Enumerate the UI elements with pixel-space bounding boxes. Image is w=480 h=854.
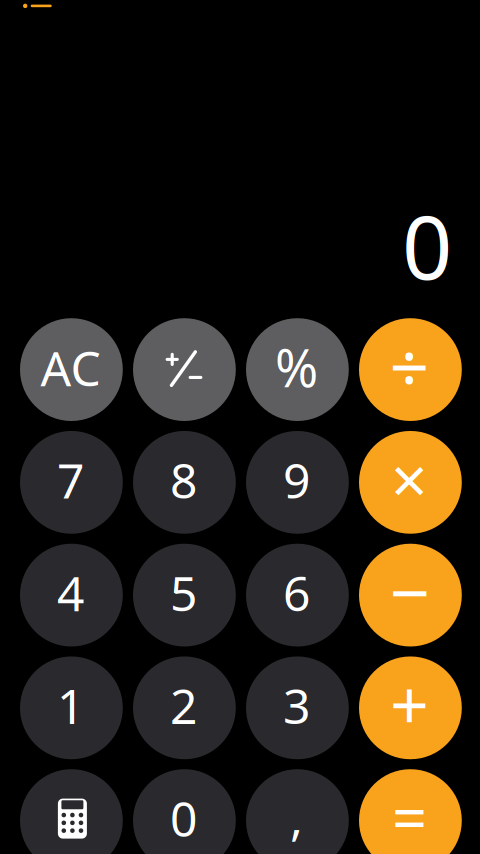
staticText: 1 (57, 673, 84, 737)
button[interactable]: 0 (133, 769, 236, 854)
button[interactable]: 8 (133, 431, 236, 534)
button[interactable]: Equals (359, 769, 462, 854)
staticText: 2 (170, 673, 197, 737)
button[interactable]: 6 (246, 544, 349, 646)
button[interactable]: 7 (20, 431, 123, 534)
staticText: 8 (170, 448, 197, 512)
staticText: 4 (57, 561, 84, 624)
staticText: 7 (57, 448, 84, 512)
button[interactable]: All clear (20, 318, 123, 421)
button[interactable]: Percent (246, 318, 349, 421)
button[interactable]: Plus minus (133, 318, 236, 421)
button[interactable]: 4 (20, 544, 123, 646)
staticText: 5 (170, 561, 197, 624)
button[interactable]: 5 (133, 544, 236, 646)
staticText: AC (40, 336, 100, 399)
staticText: × (391, 436, 428, 521)
button[interactable]: 2 (133, 656, 236, 759)
button[interactable]: 1 (20, 656, 123, 759)
staticText: = (392, 776, 427, 854)
staticText: % (275, 333, 318, 402)
button[interactable]: Add (359, 656, 462, 759)
staticText: 9 (283, 448, 310, 512)
staticText: 0 (170, 786, 197, 850)
button[interactable]: Calculator history (20, 769, 123, 854)
button[interactable]: 3 (246, 656, 349, 759)
button[interactable]: Decimal separator (246, 769, 349, 854)
staticText: 0 (402, 187, 452, 304)
button[interactable]: Multiply (359, 431, 462, 534)
staticText: , (290, 785, 303, 849)
staticText: 3 (283, 673, 310, 737)
button[interactable]: Divide (359, 318, 462, 421)
button[interactable]: Subtract (359, 544, 462, 646)
button[interactable]: 9 (246, 431, 349, 534)
staticText: 6 (283, 561, 310, 624)
staticText: ÷ (389, 320, 429, 412)
staticText: + (390, 659, 429, 749)
staticText: − (389, 544, 429, 638)
